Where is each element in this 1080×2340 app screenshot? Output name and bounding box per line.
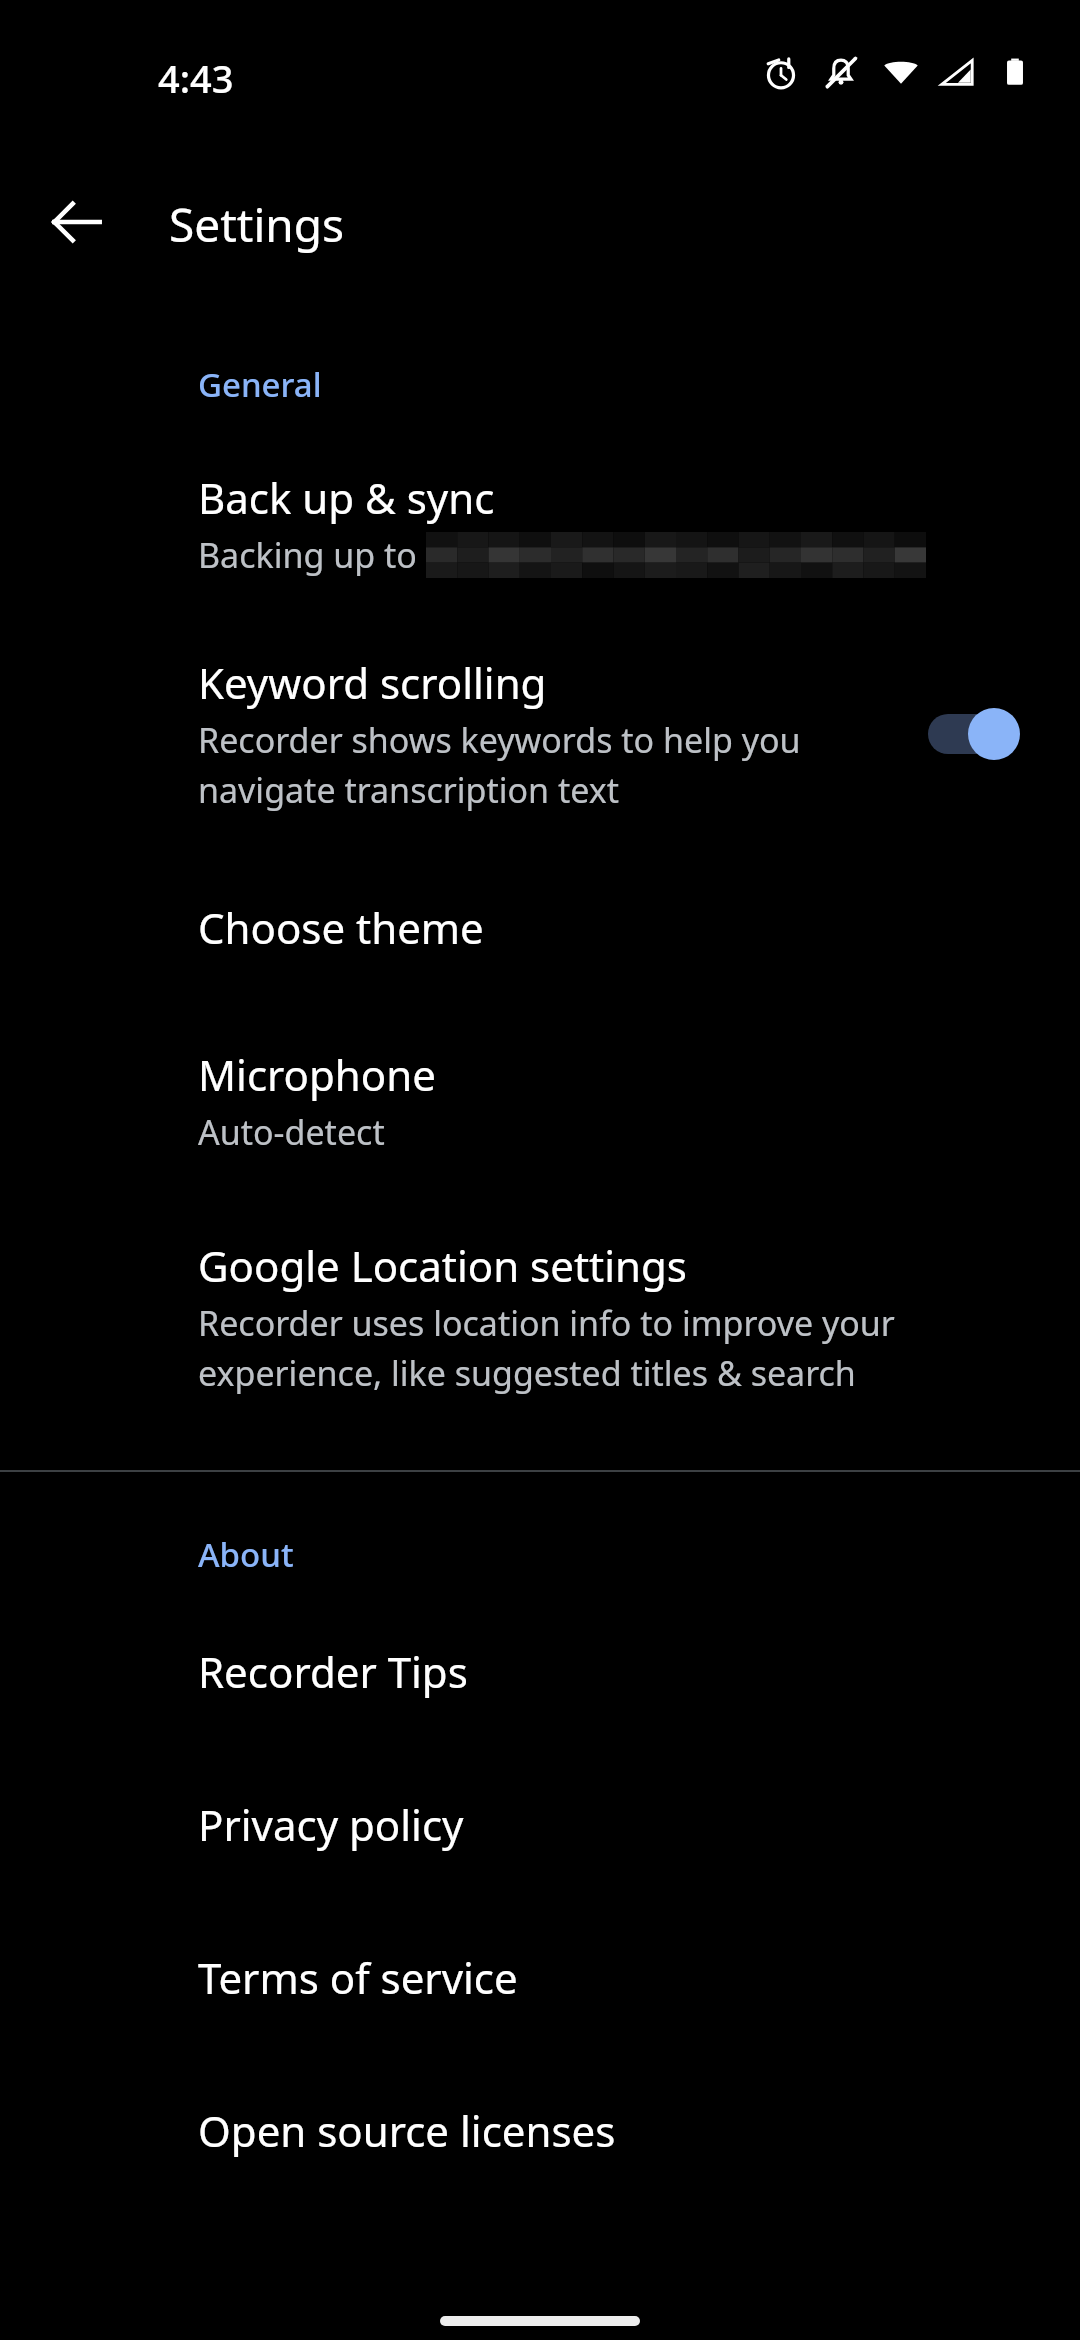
staticText: Keyword scrolling [198, 654, 547, 711]
staticText: About [198, 1532, 294, 1577]
button[interactable]: Back up & sync [0, 469, 1080, 578]
button[interactable]: Choose theme [0, 899, 1080, 956]
button[interactable]: Recorder Tips [0, 1643, 1080, 1700]
staticText: Back up & sync [198, 469, 495, 526]
staticText: Settings [169, 193, 345, 256]
button[interactable]: Open source licenses [0, 2102, 1080, 2159]
button[interactable]: Terms of service [0, 1949, 1080, 2006]
staticText: 4:43 [158, 52, 234, 104]
staticText: Privacy policy [198, 1796, 464, 1853]
button[interactable]: Keyword scrolling [0, 654, 1080, 813]
staticText: Microphone [198, 1046, 436, 1103]
button[interactable]: Privacy policy [0, 1796, 1080, 1853]
staticText: Recorder Tips [198, 1643, 468, 1700]
staticText: Recorder shows keywords to help you navi… [198, 717, 801, 813]
staticText: Recorder uses location info to improve y… [198, 1300, 895, 1396]
staticText: Google Location settings [198, 1237, 687, 1294]
button[interactable]: Back [29, 174, 125, 270]
staticText: Terms of service [198, 1949, 518, 2006]
staticText: Auto-detect [198, 1109, 385, 1155]
staticText: General [198, 362, 322, 407]
staticText: Choose theme [198, 899, 484, 956]
button[interactable]: Keyword scrolling toggle [928, 705, 1020, 763]
staticText: Open source licenses [198, 2102, 616, 2159]
button[interactable]: Microphone [0, 1046, 1080, 1155]
staticText: Backing up to [198, 532, 426, 578]
button[interactable]: Google Location settings [0, 1237, 1080, 1396]
